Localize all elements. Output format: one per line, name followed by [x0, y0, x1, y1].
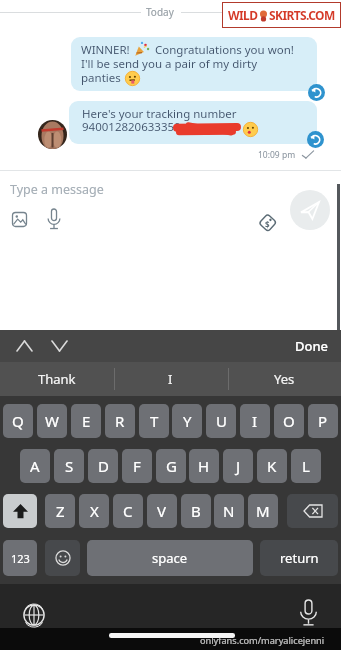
button[interactable]: return	[260, 540, 338, 576]
staticText: SKIRTS.COM	[269, 7, 335, 23]
staticText: Yes	[274, 370, 295, 388]
button[interactable]: M	[248, 494, 278, 528]
button[interactable]: Y	[172, 404, 202, 438]
button[interactable]	[307, 131, 324, 148]
staticText: Thank	[38, 370, 76, 388]
button[interactable]: G	[156, 449, 186, 483]
button[interactable]: X	[79, 494, 109, 528]
button[interactable]	[69, 101, 317, 144]
staticText: I	[252, 411, 258, 431]
button[interactable]: 123	[3, 540, 37, 576]
staticText: C	[123, 501, 133, 521]
staticText: onlyfans.com/maryalicejenni	[200, 634, 325, 647]
staticText: space	[152, 549, 188, 567]
staticText: W	[45, 411, 59, 431]
button[interactable]	[290, 190, 330, 230]
staticText: X	[90, 501, 99, 521]
staticText: J	[236, 456, 241, 476]
staticText: P	[318, 411, 328, 431]
staticText: 10:09 pm	[258, 149, 296, 161]
button[interactable]: I	[114, 362, 227, 396]
button[interactable]: R	[105, 404, 135, 438]
button[interactable]	[71, 37, 317, 91]
button[interactable]: Done	[292, 334, 332, 358]
staticText: H	[198, 456, 210, 476]
staticText: A	[30, 456, 40, 476]
button[interactable]: F	[122, 449, 152, 483]
button[interactable]: O	[274, 404, 304, 438]
button[interactable]: U	[206, 404, 236, 438]
staticText: Done	[295, 337, 329, 355]
button[interactable]	[47, 209, 61, 230]
button[interactable]: N	[214, 494, 244, 528]
staticText: L	[302, 456, 310, 476]
staticText: G	[166, 456, 177, 476]
staticText: U	[216, 411, 227, 431]
staticText: B	[191, 501, 201, 521]
staticText: Congratulations you won!	[155, 42, 294, 58]
staticText: Y	[183, 411, 192, 431]
staticText: Here's your tracking number	[82, 106, 237, 122]
button[interactable]: T	[139, 404, 169, 438]
button[interactable]: S	[54, 449, 84, 483]
staticText: Z	[56, 501, 65, 521]
staticText: Type a message	[10, 181, 104, 198]
button[interactable]	[300, 600, 317, 627]
staticText: Today	[146, 5, 174, 19]
button[interactable]: I	[240, 404, 270, 438]
staticText: K	[267, 456, 277, 476]
staticText: Q	[12, 411, 24, 431]
button[interactable]: space	[87, 540, 253, 576]
button[interactable]: A	[20, 449, 50, 483]
button[interactable]: H	[189, 449, 219, 483]
button[interactable]	[287, 494, 338, 528]
button[interactable]: K	[257, 449, 287, 483]
staticText: O	[283, 411, 295, 431]
button[interactable]: V	[147, 494, 177, 528]
staticText: I'll be send you a pair of my dirty	[81, 56, 258, 72]
button[interactable]: E	[71, 404, 101, 438]
button[interactable]	[23, 604, 45, 626]
staticText: V	[157, 501, 167, 521]
button[interactable]: D	[88, 449, 118, 483]
staticText: 940012820633350	[82, 119, 181, 135]
staticText: E	[82, 411, 91, 431]
button[interactable]: Thank	[0, 362, 113, 396]
button[interactable]: $	[257, 212, 279, 233]
button[interactable]: Z	[45, 494, 75, 528]
staticText: N	[223, 501, 235, 521]
button[interactable]	[3, 494, 37, 528]
button[interactable]	[52, 341, 67, 351]
staticText: T	[150, 411, 159, 431]
button[interactable]	[17, 341, 32, 351]
button[interactable]	[45, 540, 80, 576]
button[interactable]: W	[37, 404, 67, 438]
button[interactable]	[12, 212, 27, 227]
button[interactable]: L	[291, 449, 321, 483]
staticText: panties	[81, 70, 121, 86]
staticText: I	[168, 370, 173, 388]
staticText: F	[133, 456, 141, 476]
staticText: WILD	[228, 7, 258, 23]
button[interactable]: P	[308, 404, 338, 438]
button[interactable]: Q	[3, 404, 33, 438]
button[interactable]: Yes	[228, 362, 341, 396]
staticText: S	[65, 456, 74, 476]
staticText: 123	[11, 551, 30, 566]
staticText: M	[256, 501, 270, 521]
staticText: return	[280, 549, 319, 567]
button[interactable]: C	[113, 494, 143, 528]
staticText: $	[265, 219, 270, 230]
staticText: R	[115, 411, 125, 431]
button[interactable]	[308, 84, 325, 101]
button[interactable]: J	[223, 449, 253, 483]
button[interactable]: B	[181, 494, 211, 528]
staticText: WINNER!	[81, 42, 130, 58]
staticText: D	[98, 456, 109, 476]
